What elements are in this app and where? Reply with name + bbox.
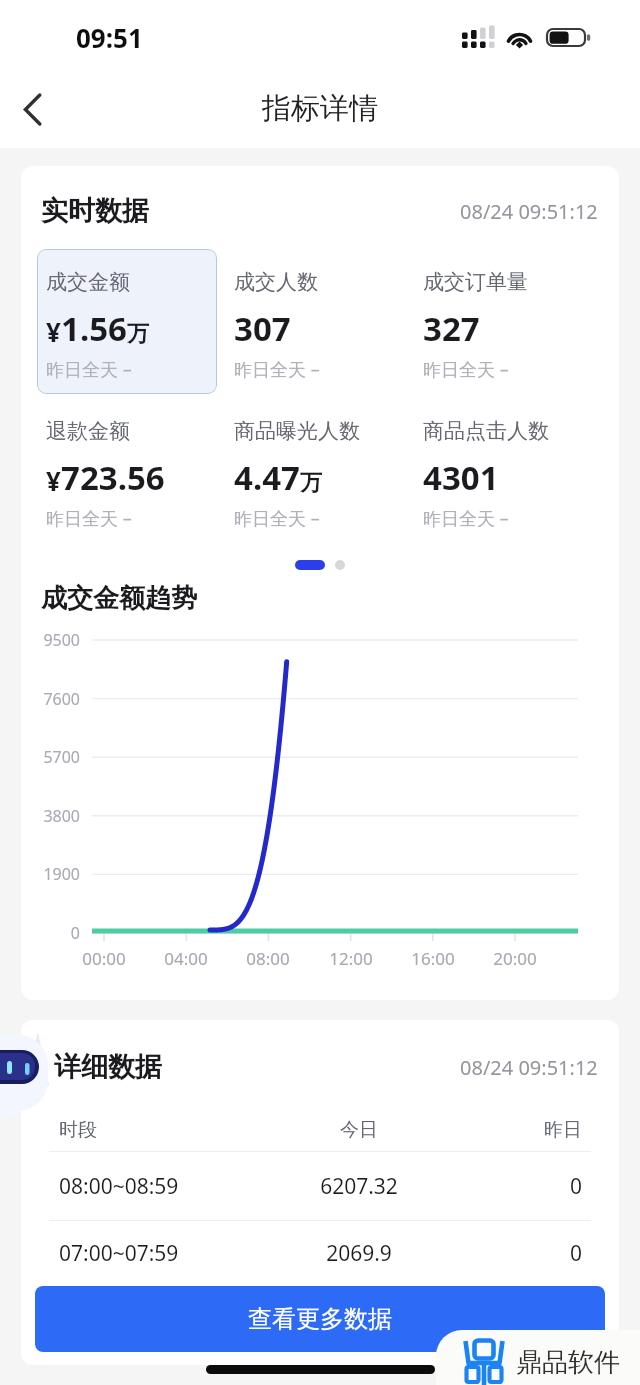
staticText: 2069.9 (282, 1239, 436, 1268)
staticText: 08:00~08:59 (59, 1172, 282, 1201)
staticText: 成交订单量 (423, 269, 528, 295)
staticText: 00:00 (64, 947, 144, 970)
staticText: 327 (423, 306, 480, 351)
staticText: 5700 (21, 746, 80, 768)
button[interactable]: Page 2 (335, 560, 345, 570)
button[interactable]: 商品曝光人数 (225, 398, 406, 543)
staticText: 昨日全天 – (423, 357, 509, 382)
staticText: 08/24 09:51:12 (460, 1054, 598, 1081)
staticText: 今日 (282, 1118, 436, 1142)
staticText: 万 (127, 320, 149, 348)
staticText: 实时数据 (41, 194, 149, 228)
staticText: 09:51 (76, 20, 143, 55)
staticText: 鼎品软件 (516, 1346, 620, 1379)
staticText: 4301 (423, 455, 499, 500)
staticText: 07:00~07:59 (59, 1239, 282, 1268)
staticText: 商品点击人数 (423, 418, 549, 444)
button[interactable]: Page 1 (295, 560, 325, 570)
button[interactable]: 成交人数 (225, 249, 406, 394)
staticText: 08:00 (228, 947, 308, 970)
button[interactable]: 成交金额 (37, 249, 217, 394)
button[interactable]: 07:00~07:59 (59, 1221, 582, 1285)
staticText: 307 (234, 306, 291, 351)
button[interactable]: 成交订单量 (414, 249, 595, 394)
staticText: 昨日全天 – (46, 506, 132, 531)
staticText: 昨日全天 – (423, 506, 509, 531)
button[interactable]: 退款金额 (37, 398, 217, 543)
staticText: 20:00 (475, 947, 555, 970)
staticText: 6207.32 (282, 1172, 436, 1201)
staticText: 08/24 09:51:12 (460, 198, 598, 225)
staticText: 1.56 (61, 306, 127, 351)
staticText: 商品曝光人数 (234, 418, 360, 444)
staticText: 04:00 (146, 947, 226, 970)
staticText: 1900 (21, 863, 80, 885)
staticText: 指标详情 (262, 90, 378, 127)
staticText: 昨日全天 – (234, 357, 320, 382)
staticText: 3800 (21, 805, 80, 827)
button[interactable]: 08:00~08:59 (59, 1152, 582, 1220)
staticText: 0 (21, 922, 80, 944)
staticText: 9500 (21, 629, 80, 651)
staticText: 退款金额 (46, 418, 130, 444)
button[interactable]: 商品点击人数 (414, 398, 595, 543)
staticText: 成交金额趋势 (41, 582, 197, 615)
staticText: 昨日全天 – (234, 506, 320, 531)
staticText: 16:00 (393, 947, 473, 970)
staticText: 723.56 (61, 455, 165, 500)
staticText: 时段 (59, 1118, 282, 1142)
staticText: ¥ (46, 463, 61, 498)
staticText: 0 (436, 1239, 582, 1268)
staticText: 7600 (21, 688, 80, 710)
staticText: 详细数据 (54, 1050, 162, 1084)
staticText: ¥ (46, 314, 61, 349)
staticText: 昨日 (436, 1118, 582, 1142)
staticText: 成交金额 (46, 269, 130, 295)
button[interactable]: Back (3, 79, 63, 139)
staticText: 成交人数 (234, 269, 318, 295)
staticText: 4.47 (234, 455, 300, 500)
staticText: 0 (436, 1172, 582, 1201)
button[interactable]: 时段 (59, 1109, 582, 1151)
staticText: 昨日全天 – (46, 357, 132, 382)
button[interactable]: 查看更多数据 (35, 1286, 605, 1352)
staticText: 万 (300, 469, 322, 497)
staticText: 查看更多数据 (248, 1304, 392, 1334)
staticText: 12:00 (311, 947, 391, 970)
